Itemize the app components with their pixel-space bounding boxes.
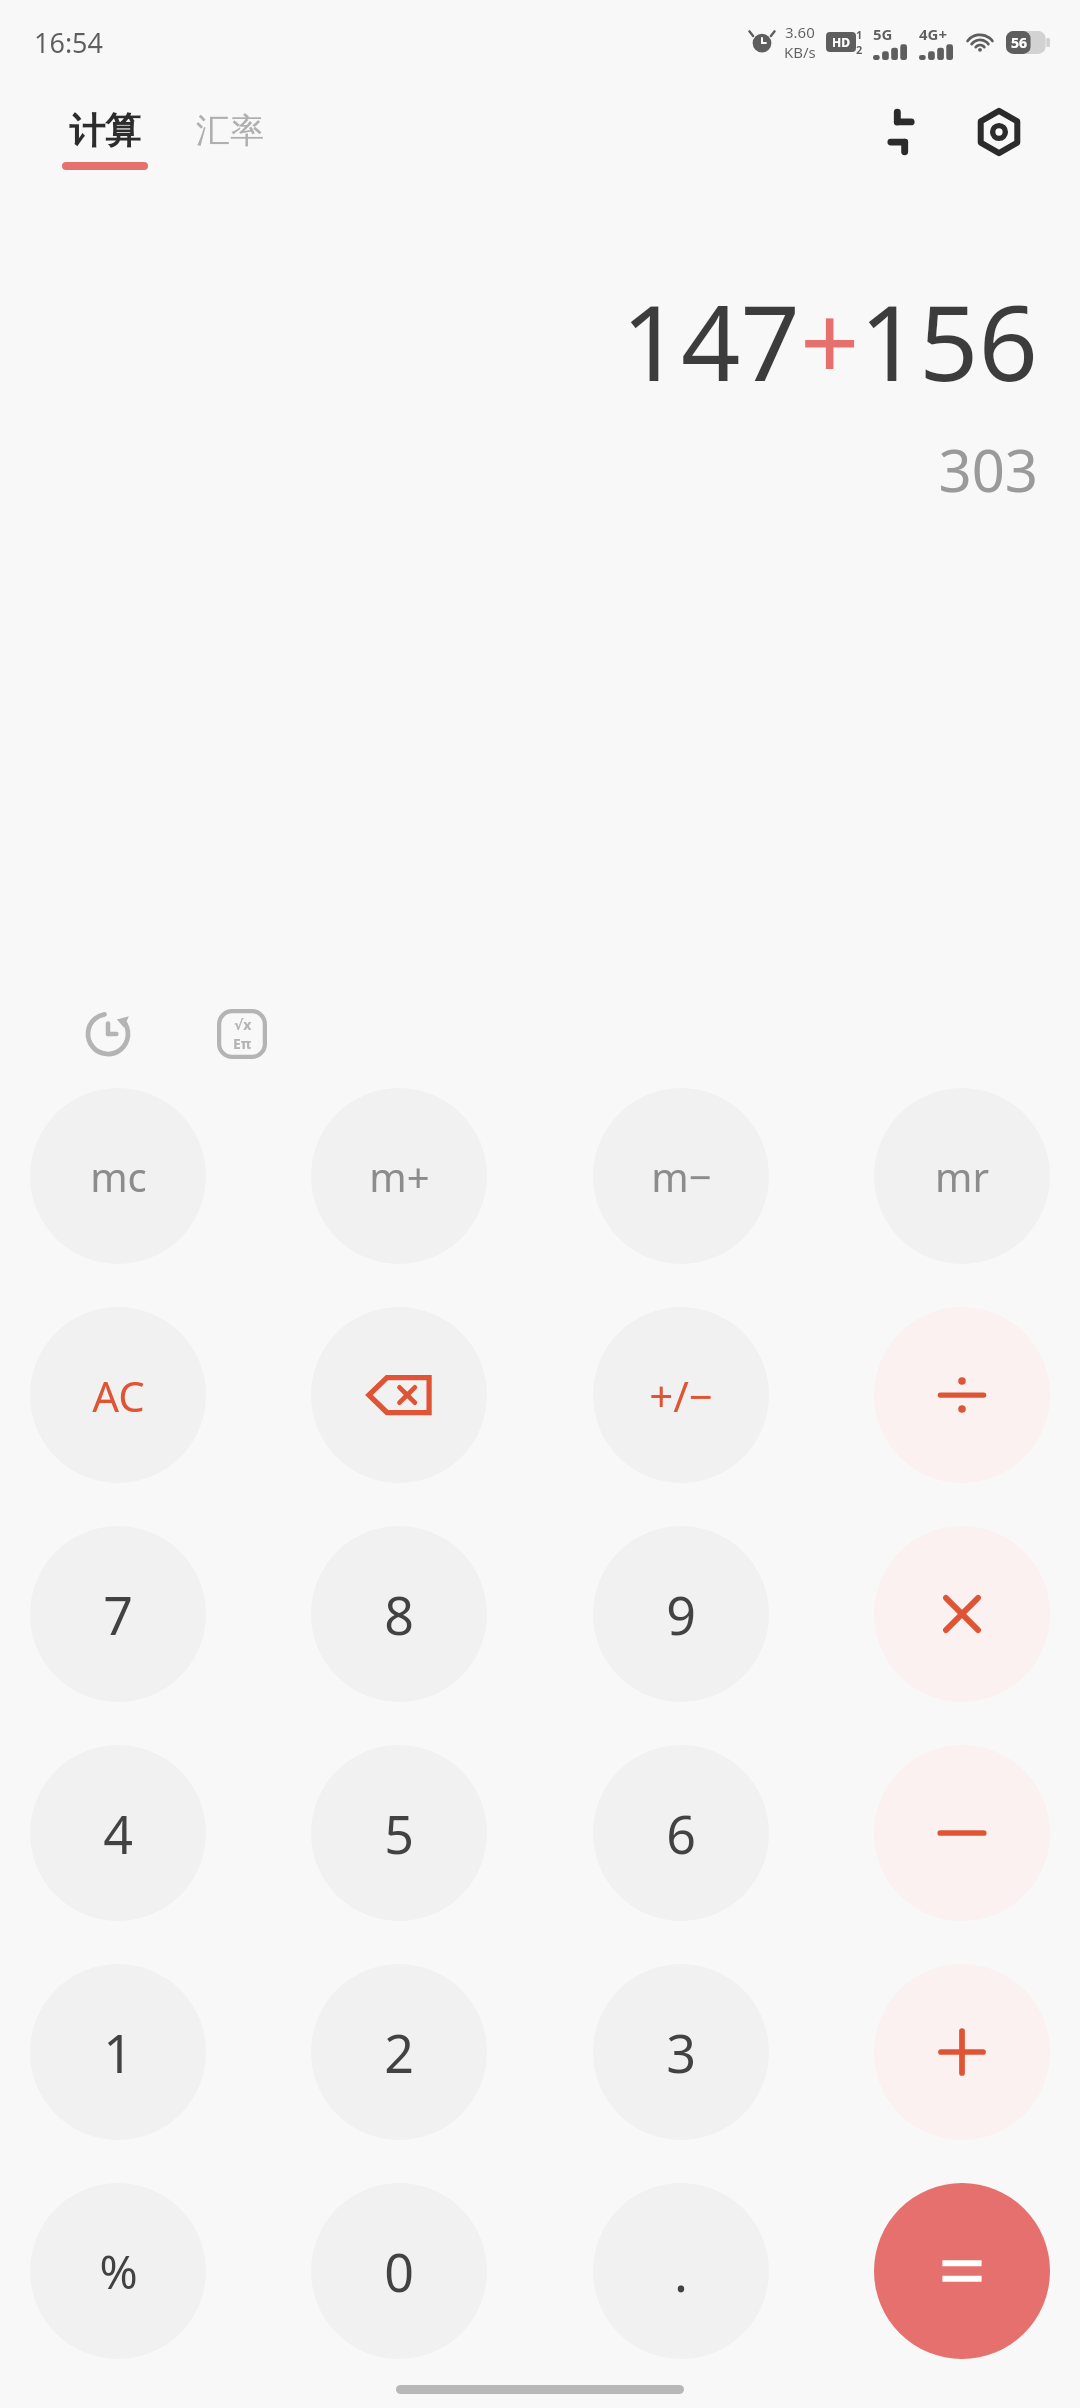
- staticText: %: [99, 2240, 138, 2303]
- staticText: 9: [666, 1579, 696, 1650]
- staticText: 1: [856, 27, 863, 42]
- staticText: 56: [1011, 33, 1028, 52]
- button[interactable]: Multiply: [874, 1526, 1050, 1702]
- staticText: mc: [90, 1149, 147, 1203]
- staticText: 4G+: [919, 24, 948, 44]
- button[interactable]: 8: [311, 1526, 487, 1702]
- button[interactable]: 6: [593, 1745, 769, 1921]
- staticText: mr: [935, 1149, 989, 1203]
- staticText: 1: [103, 2017, 133, 2088]
- button[interactable]: +/−: [593, 1307, 769, 1483]
- button[interactable]: 计算: [62, 108, 148, 170]
- staticText: Eπ: [233, 1034, 252, 1053]
- button[interactable]: 7: [30, 1526, 206, 1702]
- button[interactable]: Expand: [870, 101, 932, 163]
- staticText: 0: [384, 2236, 414, 2307]
- staticText: 2: [856, 42, 863, 57]
- button[interactable]: m−: [593, 1088, 769, 1264]
- button[interactable]: m+: [311, 1088, 487, 1264]
- button[interactable]: 3: [593, 1964, 769, 2140]
- button[interactable]: mr: [874, 1088, 1050, 1264]
- button[interactable]: .: [593, 2183, 769, 2359]
- staticText: 3.60: [785, 22, 815, 42]
- button[interactable]: 2: [311, 1964, 487, 2140]
- button[interactable]: Scientific mode: [210, 1002, 274, 1066]
- staticText: 6: [666, 1798, 696, 1869]
- staticText: 8: [384, 1579, 414, 1650]
- staticText: 7: [103, 1579, 133, 1650]
- staticText: 汇率: [196, 109, 264, 152]
- button[interactable]: 9: [593, 1526, 769, 1702]
- button[interactable]: Minus: [874, 1745, 1050, 1921]
- staticText: m+: [369, 1149, 430, 1203]
- staticText: √x: [234, 1015, 252, 1034]
- staticText: 4: [103, 1798, 133, 1869]
- staticText: 303: [938, 430, 1038, 509]
- button[interactable]: 汇率: [196, 109, 264, 169]
- staticText: 3: [666, 2017, 696, 2088]
- staticText: HD: [832, 34, 850, 50]
- staticText: 5: [384, 1798, 414, 1869]
- staticText: KB/s: [784, 42, 816, 62]
- staticText: 16:54: [34, 24, 104, 61]
- button[interactable]: 4: [30, 1745, 206, 1921]
- staticText: 计算: [69, 108, 141, 153]
- button[interactable]: AC: [30, 1307, 206, 1483]
- button[interactable]: Equals: [874, 2183, 1050, 2359]
- staticText: AC: [92, 1367, 145, 1424]
- button[interactable]: Divide: [874, 1307, 1050, 1483]
- staticText: m−: [651, 1149, 712, 1203]
- button[interactable]: %: [30, 2183, 206, 2359]
- staticText: 5G: [873, 24, 893, 44]
- button[interactable]: 0: [311, 2183, 487, 2359]
- button[interactable]: 5: [311, 1745, 487, 1921]
- button[interactable]: mc: [30, 1088, 206, 1264]
- button[interactable]: History: [76, 1002, 140, 1066]
- staticText: +/−: [649, 1367, 713, 1424]
- button[interactable]: Backspace: [311, 1307, 487, 1483]
- button[interactable]: Settings: [968, 101, 1030, 163]
- button[interactable]: 1: [30, 1964, 206, 2140]
- staticText: 147+156: [621, 270, 1038, 412]
- staticText: 2: [384, 2017, 414, 2088]
- button[interactable]: Plus: [874, 1964, 1050, 2140]
- staticText: .: [674, 2236, 688, 2307]
